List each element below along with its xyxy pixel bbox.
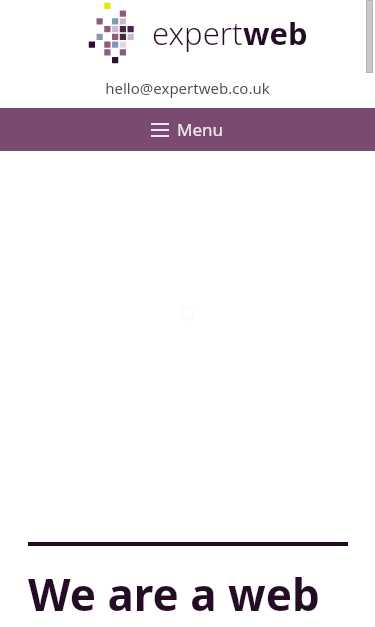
button[interactable]: hello@expertweb.co.uk [105, 78, 270, 98]
staticText: We are a web design agency [28, 564, 343, 627]
staticText: expert [152, 12, 243, 54]
other: Menu [151, 123, 169, 137]
staticText: web [243, 12, 308, 54]
button[interactable]: expertweb home [88, 2, 308, 64]
button[interactable]: Menu [0, 108, 375, 151]
staticText: Menu [177, 118, 224, 141]
